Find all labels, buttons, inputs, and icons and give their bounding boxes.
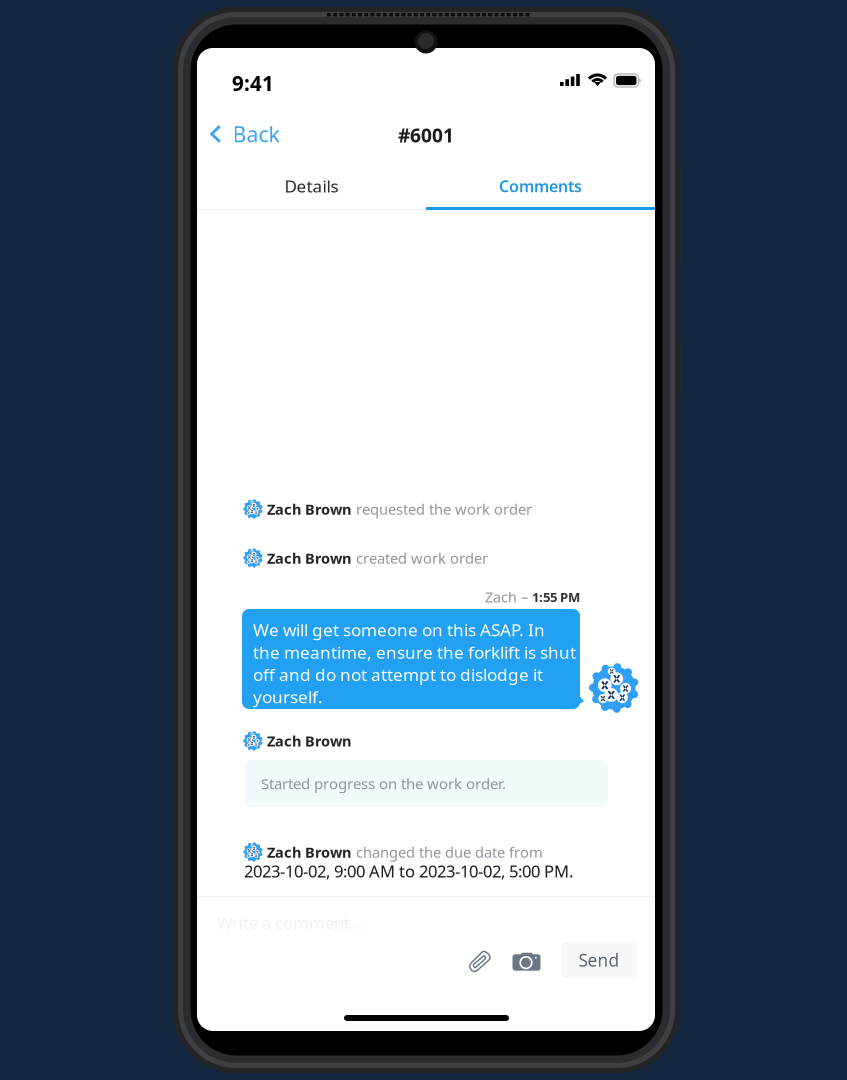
staticText: 9:41 xyxy=(232,69,274,97)
staticText: Zach Brown xyxy=(267,548,351,568)
staticText: Zach Brown xyxy=(267,731,351,751)
staticText: 2023-10-02, 9:00 AM to 2023-10-02, 5:00 … xyxy=(244,860,573,882)
staticText: Started progress on the work order. xyxy=(261,773,506,794)
staticText: Comments xyxy=(499,175,582,197)
staticText: Zach – xyxy=(485,587,532,607)
staticText: Zach Brown xyxy=(267,499,351,519)
staticText: off and do not attempt to dislodge it xyxy=(253,663,543,686)
staticText: Back xyxy=(232,120,279,148)
staticText: created work order xyxy=(356,548,488,568)
staticText: #6001 xyxy=(398,122,454,148)
staticText: Write a comment... xyxy=(217,911,365,934)
staticText: Send xyxy=(578,948,619,972)
staticText: Zach Brown xyxy=(267,842,351,862)
staticText: 1:55 PM xyxy=(532,588,580,606)
button[interactable]: Comments xyxy=(426,162,655,210)
staticText: the meantime, ensure the forklift is shu… xyxy=(253,640,576,664)
staticText: We will get someone on this ASAP. In xyxy=(253,618,545,641)
button[interactable]: Back xyxy=(197,117,302,151)
button[interactable]: Take photo xyxy=(512,950,540,971)
staticText: requested the work order xyxy=(356,499,532,519)
staticText: Details xyxy=(284,174,338,198)
button[interactable]: Details xyxy=(197,162,426,210)
button[interactable]: Attach file xyxy=(469,949,491,972)
staticText: yourself. xyxy=(253,685,323,708)
staticText: changed the due date from xyxy=(356,842,543,862)
button[interactable]: Send xyxy=(561,942,637,978)
